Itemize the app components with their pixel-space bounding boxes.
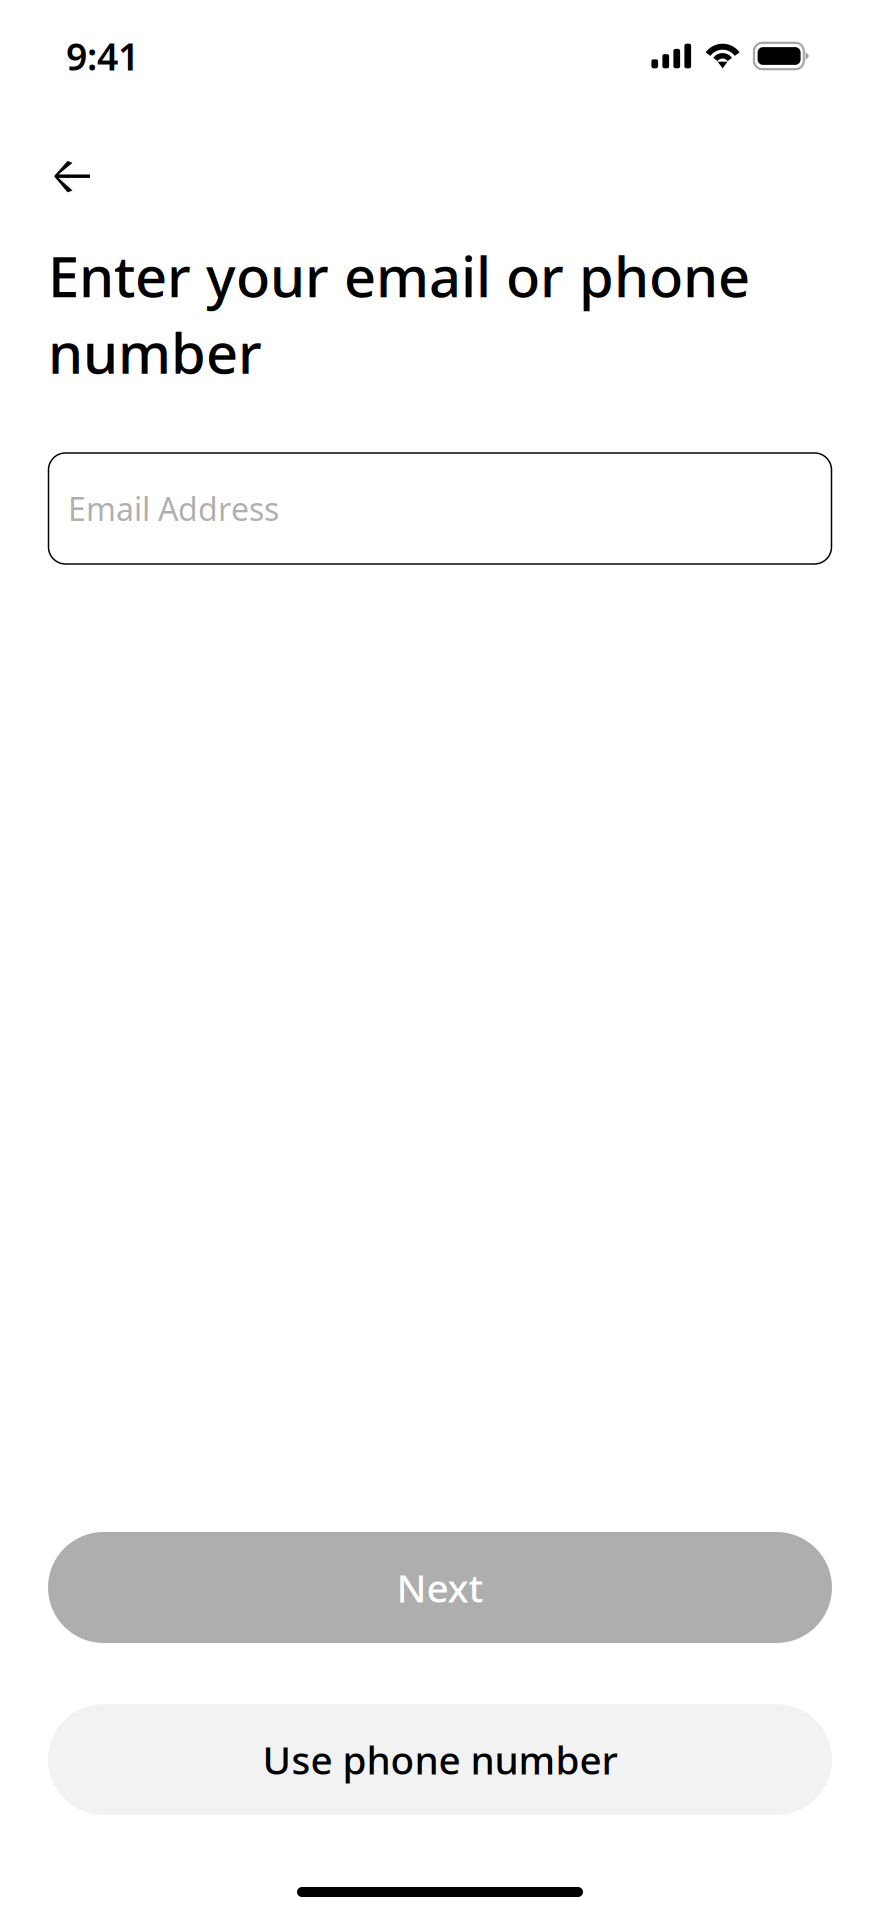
button[interactable]: Email Address — [0, 389, 880, 564]
staticText: Email Address — [68, 487, 279, 530]
staticText: 9:41 — [66, 31, 139, 81]
staticText: Enter your email or phone number — [48, 238, 750, 389]
staticText: Next — [396, 1562, 483, 1613]
button[interactable]: Use phone number — [0, 1643, 880, 1815]
staticText: Use phone number — [262, 1734, 617, 1785]
button[interactable]: Next — [0, 1532, 880, 1643]
button[interactable]: Back — [0, 70, 120, 207]
